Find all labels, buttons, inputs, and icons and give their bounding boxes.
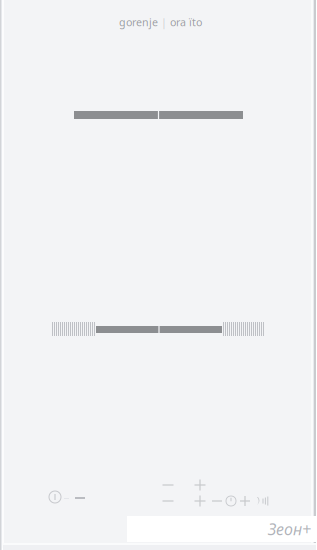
button[interactable]: Decrease timer [211, 494, 223, 508]
staticText: ora ïto [170, 15, 202, 29]
button[interactable]: Increase timer [239, 494, 251, 508]
button[interactable]: Decrease left zone [161, 478, 175, 492]
button[interactable]: Increase left zone [193, 478, 207, 492]
button[interactable]: Timer [225, 494, 237, 508]
staticText: gorenje [119, 15, 158, 29]
staticText: Зеон+ [268, 518, 311, 540]
button[interactable]: Decrease right zone [161, 494, 175, 508]
staticText: | [158, 15, 170, 29]
button[interactable]: Power [47, 489, 63, 505]
button[interactable]: Power boost [256, 494, 269, 508]
button[interactable]: Increase right zone [193, 494, 207, 508]
